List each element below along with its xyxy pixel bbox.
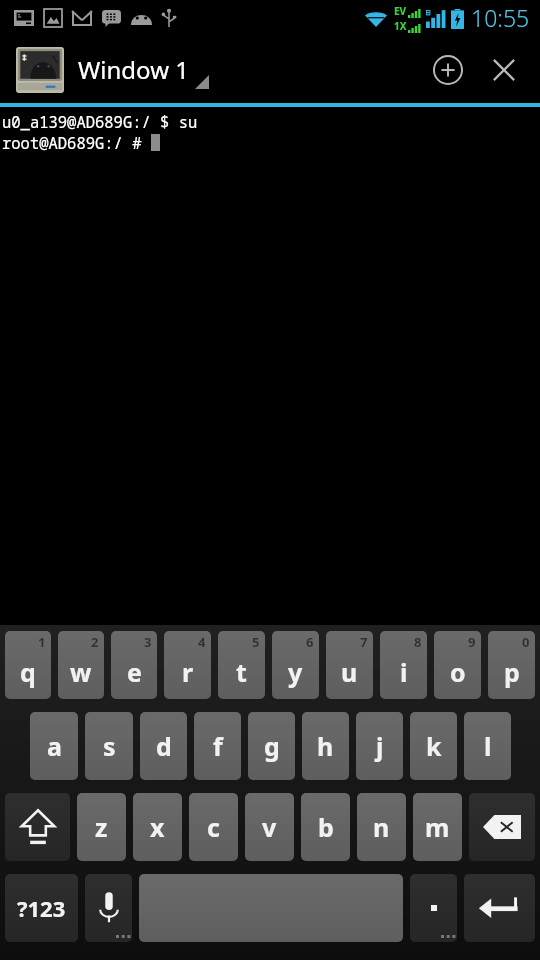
button[interactable]: k [410,712,457,780]
button[interactable]: Backspace [469,793,535,861]
button[interactable]: 8 [380,631,427,699]
staticText: 10:55 [471,2,530,33]
staticText: i [400,655,408,689]
staticText: u0_a139@AD689G:/ $ su [2,111,198,132]
button[interactable]: 4 [164,631,211,699]
button[interactable]: m [413,793,462,861]
button[interactable]: a [30,712,78,780]
staticText: 1X [394,19,407,33]
button[interactable]: Close window [476,42,532,98]
staticText: d [156,729,172,763]
staticText: 0 [522,633,530,651]
staticText: s [103,729,116,763]
staticText: l [484,729,492,763]
staticText: x [150,810,165,844]
button[interactable]: 2 [58,631,104,699]
staticText: k [426,729,442,763]
staticText: w [70,655,92,689]
staticText: u [341,655,358,689]
staticText: o [450,655,466,689]
button[interactable]: Window 1 [78,36,420,103]
staticText: v [262,810,277,844]
button[interactable]: 6 [272,631,319,699]
staticText: j [376,729,384,763]
button[interactable]: f [194,712,241,780]
staticText: 9 [468,633,476,651]
staticText: Window 1 [78,53,189,86]
button[interactable]: n [357,793,406,861]
staticText: ?123 [17,893,66,923]
button[interactable]: 9 [434,631,481,699]
staticText: 6 [306,633,314,651]
button[interactable] [410,874,457,942]
staticText: r [182,655,194,689]
staticText: t [236,655,247,689]
staticText: n [373,810,390,844]
button[interactable]: 7 [326,631,373,699]
button[interactable]: 1 [5,631,51,699]
button[interactable]: d [140,712,187,780]
staticText: z [95,810,108,844]
button[interactable]: l [464,712,511,780]
staticText: 8 [414,633,422,651]
button[interactable]: Terminal Emulator [16,47,64,93]
button[interactable]: 5 [218,631,265,699]
staticText: EV [394,4,407,18]
button[interactable]: x [133,793,182,861]
staticText: g [264,729,280,763]
staticText: c [207,810,220,844]
staticText: f [213,729,223,763]
staticText: 2 [91,633,99,651]
staticText: 4 [198,633,206,651]
button[interactable]: s [85,712,133,780]
staticText: root@AD689G:/ # [2,132,151,153]
staticText: b [318,810,334,844]
staticText: p [504,655,520,689]
staticText: 7 [360,633,368,651]
staticText: h [317,729,334,763]
button[interactable]: Enter [464,874,535,942]
staticText: 5 [252,633,260,651]
button[interactable]: Voice input [85,874,132,942]
button[interactable]: 3 [111,631,157,699]
staticText: m [425,810,450,844]
button[interactable]: j [356,712,403,780]
staticText: 3 [144,633,152,651]
button[interactable]: h [302,712,349,780]
button[interactable]: u0_a139@AD689G:/ $ su [0,107,540,625]
staticText: 1 [38,633,46,651]
button[interactable]: v [245,793,294,861]
button[interactable]: Shift [5,793,70,861]
button[interactable]: c [189,793,238,861]
button[interactable]: ?123 [5,874,78,942]
button[interactable]: Space [139,874,403,942]
button[interactable]: 0 [488,631,535,699]
staticText: a [47,729,62,763]
staticText: y [288,655,303,689]
button[interactable]: g [248,712,295,780]
button[interactable]: z [77,793,126,861]
button[interactable]: b [301,793,350,861]
staticText: e [127,655,142,689]
staticText: q [20,655,36,689]
button[interactable]: New window [420,42,476,98]
